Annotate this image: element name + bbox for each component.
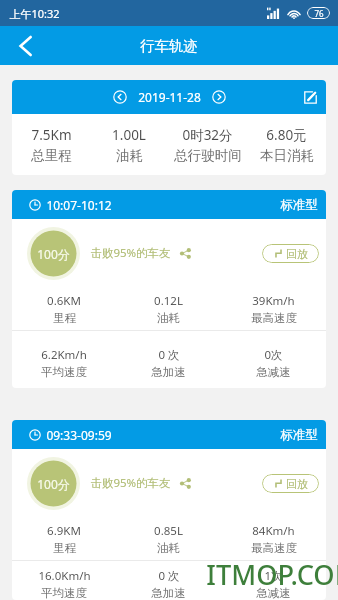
staticText: 39Km/h: [252, 293, 295, 309]
staticText: 2019-11-28: [138, 89, 201, 105]
staticText: 油耗: [157, 541, 180, 555]
staticText: 平均速度: [41, 586, 87, 600]
staticText: 0 次: [158, 568, 180, 584]
staticText: 6.2Km/h: [41, 347, 87, 363]
button[interactable]: Edit: [300, 87, 320, 107]
staticText: 油耗: [116, 147, 143, 164]
button[interactable]: Previous day: [110, 87, 130, 107]
staticText: 0 次: [158, 347, 180, 363]
staticText: 总行驶时间: [174, 147, 242, 164]
staticText: 100分: [37, 246, 70, 262]
other: Share: [180, 478, 191, 489]
staticText: 1次: [264, 568, 283, 584]
staticText: 09:33-09:59: [46, 427, 112, 443]
staticText: 6.9KM: [47, 523, 81, 539]
staticText: 击败95%的车友: [90, 245, 171, 261]
staticText: 里程: [53, 541, 76, 555]
staticText: 0.12L: [154, 293, 183, 309]
staticText: 7.5Km: [31, 126, 72, 144]
staticText: 1.00L: [112, 126, 146, 144]
staticText: 最高速度: [251, 311, 297, 325]
staticText: 84Km/h: [252, 523, 295, 539]
staticText: 标准型: [280, 427, 318, 443]
button[interactable]: 回放: [262, 474, 319, 493]
staticText: 标准型: [280, 197, 318, 213]
staticText: 10:07-10:12: [46, 197, 112, 213]
staticText: 本日消耗: [260, 147, 314, 164]
staticText: 0次: [264, 347, 283, 363]
staticText: 击败95%的车友: [90, 475, 171, 491]
staticText: 6.80元: [266, 126, 307, 144]
staticText: 回放: [286, 247, 308, 261]
staticText: 行车轨迹: [140, 37, 198, 55]
other: Share: [180, 248, 191, 259]
staticText: 回放: [286, 477, 308, 491]
staticText: 总里程: [31, 147, 72, 164]
staticText: 16.0Km/h: [38, 568, 91, 584]
staticText: 油耗: [157, 311, 180, 325]
staticText: 最高速度: [251, 541, 297, 555]
staticText: 上午10:32: [9, 6, 60, 21]
staticText: 急减速: [256, 365, 291, 379]
staticText: 100分: [37, 476, 70, 492]
staticText: 76: [314, 8, 324, 19]
staticText: 急加速: [151, 365, 186, 379]
staticText: ITMOP.COM: [206, 556, 338, 593]
button[interactable]: 回放: [262, 244, 319, 263]
staticText: 里程: [53, 311, 76, 325]
button[interactable]: Next day: [209, 87, 229, 107]
button[interactable]: Back: [0, 26, 50, 65]
staticText: 0时32分: [182, 126, 233, 144]
staticText: 0.85L: [154, 523, 183, 539]
staticText: 平均速度: [41, 365, 87, 379]
staticText: 急减速: [256, 586, 291, 600]
staticText: 急加速: [151, 586, 186, 600]
staticText: 0.6KM: [47, 293, 81, 309]
